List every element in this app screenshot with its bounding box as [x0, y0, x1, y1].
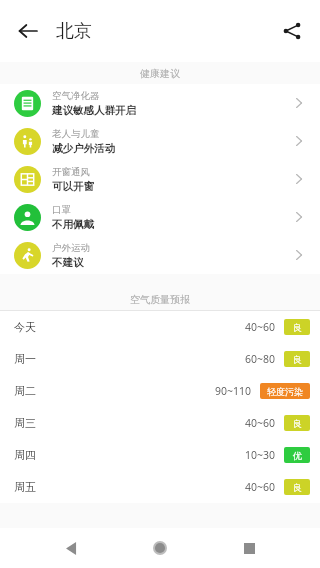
- staticText: 北京: [56, 20, 92, 43]
- staticText: 健康建议: [140, 67, 180, 80]
- staticText: 老人与儿童: [52, 128, 100, 140]
- button[interactable]: 老人与儿童: [0, 122, 320, 160]
- staticText: 周三: [14, 416, 36, 430]
- button[interactable]: 周四: [0, 439, 320, 471]
- staticText: 60~80: [245, 352, 276, 366]
- button[interactable]: 周一: [0, 343, 320, 375]
- staticText: 空气净化器: [52, 90, 100, 102]
- staticText: 轻度污染: [267, 386, 303, 397]
- button[interactable]: 今天: [0, 311, 320, 343]
- button[interactable]: Back: [6, 9, 50, 53]
- staticText: 10~30: [245, 448, 276, 462]
- staticText: 40~60: [245, 480, 276, 494]
- staticText: 周四: [14, 448, 36, 462]
- staticText: 空气质量预报: [130, 293, 190, 306]
- button[interactable]: 口罩: [0, 198, 320, 236]
- staticText: 优: [293, 450, 302, 461]
- staticText: 今天: [14, 320, 36, 334]
- staticText: 可以开窗: [52, 180, 94, 193]
- button[interactable]: 空气净化器: [0, 84, 320, 122]
- staticText: 良: [293, 482, 302, 493]
- button[interactable]: 周三: [0, 407, 320, 439]
- staticText: 建议敏感人群开启: [52, 104, 136, 117]
- button[interactable]: 周二: [0, 375, 320, 407]
- staticText: 良: [293, 418, 302, 429]
- button[interactable]: Home: [142, 530, 178, 566]
- staticText: 户外运动: [52, 242, 90, 254]
- staticText: 不建议: [52, 256, 84, 269]
- staticText: 良: [293, 322, 302, 333]
- staticText: 不用佩戴: [52, 218, 94, 231]
- staticText: 减少户外活动: [52, 142, 115, 155]
- button[interactable]: 开窗通风: [0, 160, 320, 198]
- button[interactable]: Share: [270, 9, 314, 53]
- staticText: 90~110: [215, 384, 252, 398]
- staticText: 良: [293, 354, 302, 365]
- staticText: 开窗通风: [52, 166, 90, 178]
- staticText: 周二: [14, 384, 36, 398]
- staticText: 40~60: [245, 416, 276, 430]
- staticText: 40~60: [245, 320, 276, 334]
- button[interactable]: Recents: [231, 530, 267, 566]
- staticText: 周五: [14, 480, 36, 494]
- button[interactable]: 周五: [0, 471, 320, 503]
- staticText: 周一: [14, 352, 36, 366]
- staticText: 口罩: [52, 204, 71, 216]
- button[interactable]: 户外运动: [0, 236, 320, 274]
- button[interactable]: Back: [53, 530, 89, 566]
